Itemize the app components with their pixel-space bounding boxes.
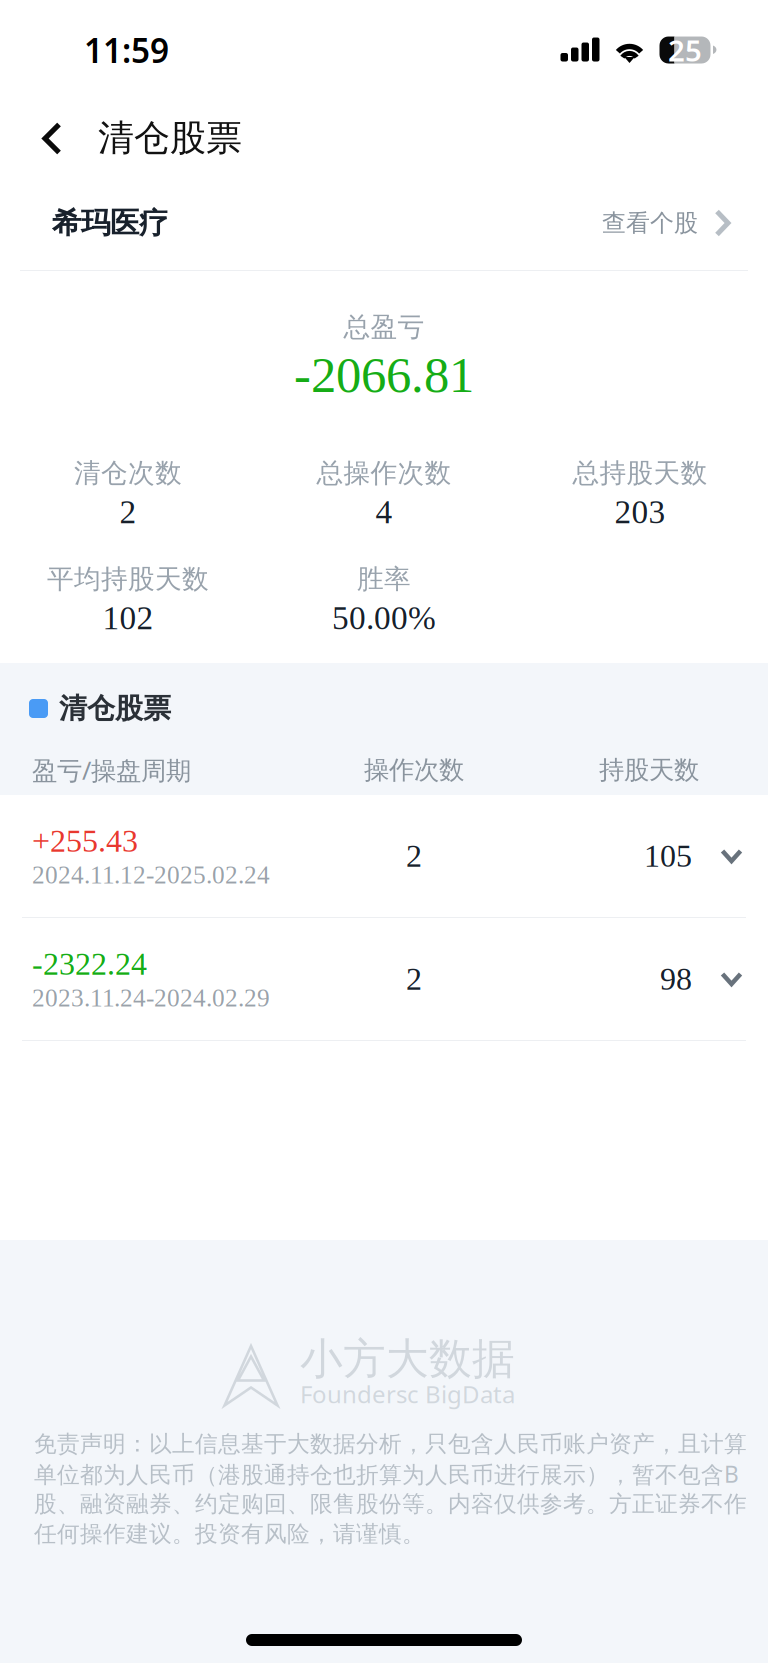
staticText: 盈亏/操盘周期 xyxy=(32,753,191,787)
staticText: 50.00% xyxy=(332,599,436,636)
staticText: 98 xyxy=(660,961,692,997)
staticText: Foundersc BigData xyxy=(300,1378,515,1410)
staticText: 清仓次数 xyxy=(74,457,182,489)
staticText: -2066.81 xyxy=(294,347,474,403)
staticText: 持股天数 xyxy=(599,754,699,785)
staticText: 任何操作建议。投资有风险，请谨慎。 xyxy=(34,1520,425,1548)
staticText: 2024.11.12-2025.02.24 xyxy=(32,861,270,889)
staticText: 102 xyxy=(102,599,153,636)
staticText: 操作次数 xyxy=(364,754,464,785)
button[interactable]: +255.43 xyxy=(0,795,768,917)
button[interactable]: -2322.24 xyxy=(0,918,768,1040)
staticText: 2 xyxy=(406,838,422,874)
staticText: 203 xyxy=(614,493,665,530)
staticText: 105 xyxy=(644,838,692,874)
staticText: 免责声明：以上信息基于大数据分析，只包含人民币账户资产，且计算 xyxy=(34,1430,747,1458)
staticText: 总操作次数 xyxy=(316,457,451,489)
staticText: 希玛医疗 xyxy=(52,205,168,241)
staticText: 查看个股 xyxy=(602,208,698,238)
button[interactable]: Back xyxy=(0,100,98,182)
staticText: 股、融资融券、约定购回、限售股份等。内容仅供参考。方正证券不作 xyxy=(34,1490,747,1518)
staticText: 单位都为人民币（港股通持仓也折算为人民币进行展示），暂不包含B xyxy=(34,1459,739,1489)
staticText: 总盈亏 xyxy=(343,311,424,343)
staticText: -2322.24 xyxy=(32,946,147,982)
staticText: 小方大数据 xyxy=(300,1333,515,1385)
staticText: 清仓股票 xyxy=(98,116,242,160)
staticText: 11:59 xyxy=(84,28,169,72)
staticText: 2023.11.24-2024.02.29 xyxy=(32,984,270,1012)
staticText: 2 xyxy=(119,493,136,530)
staticText: 25 xyxy=(668,30,702,69)
staticText: 胜率 xyxy=(357,563,411,595)
staticText: 总持股天数 xyxy=(572,457,707,489)
staticText: 2 xyxy=(406,961,422,997)
staticText: 平均持股天数 xyxy=(47,563,209,595)
button[interactable]: 查看个股 xyxy=(602,192,732,254)
staticText: +255.43 xyxy=(32,823,138,859)
staticText: 4 xyxy=(375,493,392,530)
staticText: 清仓股票 xyxy=(59,691,171,726)
